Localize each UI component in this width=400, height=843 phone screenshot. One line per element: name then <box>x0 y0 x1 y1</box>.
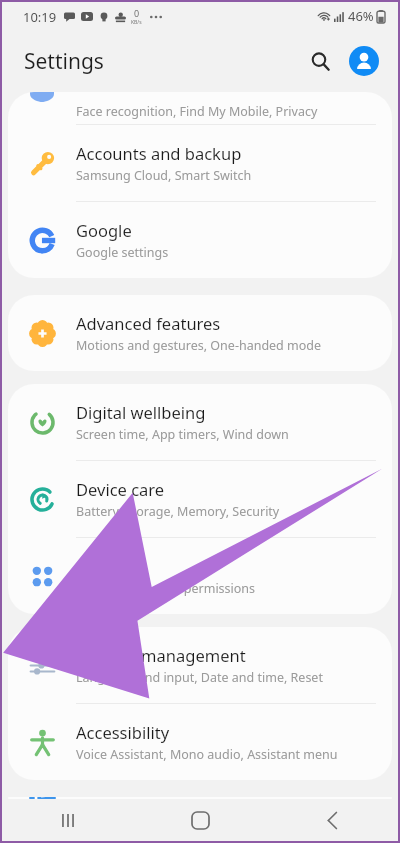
button[interactable]: General management <box>8 627 392 703</box>
button[interactable]: Google <box>8 202 392 278</box>
staticText: Voice Assistant, Mono audio, Assistant m… <box>76 746 338 763</box>
staticText: Face recognition, Find My Mobile, Privac… <box>76 103 318 120</box>
staticText: Default apps, App permissions <box>76 580 256 597</box>
staticText: Motions and gestures, One-handed mode <box>76 337 322 354</box>
staticText: KB/s <box>131 19 142 26</box>
button[interactable]: Accessibility <box>8 704 392 780</box>
staticText: Google settings <box>76 244 169 261</box>
staticText: 0 <box>134 7 140 19</box>
staticText: 46% <box>348 7 374 25</box>
button[interactable]: Account <box>344 41 384 81</box>
staticText: Google <box>76 219 132 241</box>
staticText: Device care <box>76 478 165 500</box>
staticText: Battery, Storage, Memory, Security <box>76 503 280 520</box>
staticText: Advanced features <box>76 312 221 334</box>
staticText: General management <box>76 644 246 666</box>
button[interactable]: Software update <box>8 797 392 799</box>
button[interactable]: Back <box>266 799 398 841</box>
button[interactable]: Home <box>134 799 266 841</box>
staticText: Digital wellbeing <box>76 401 206 423</box>
button[interactable]: Face recognition, Find My Mobile, Privac… <box>8 92 392 124</box>
button[interactable]: Advanced features <box>8 295 392 371</box>
staticText: Accessibility <box>76 721 170 743</box>
staticText: Apps <box>76 555 115 577</box>
button[interactable]: Device care <box>8 461 392 537</box>
staticText: Settings <box>24 47 104 76</box>
staticText: Screen time, App timers, Wind down <box>76 426 289 443</box>
staticText: Accounts and backup <box>76 142 242 164</box>
button[interactable]: Recents <box>2 799 134 841</box>
button[interactable]: Accounts and backup <box>8 125 392 201</box>
button[interactable]: Search <box>300 41 340 81</box>
staticText: Language and input, Date and time, Reset <box>76 669 323 686</box>
button[interactable]: Apps <box>8 538 392 614</box>
staticText: 10:19 <box>23 8 57 26</box>
staticText: Samsung Cloud, Smart Switch <box>76 167 252 184</box>
button[interactable]: Digital wellbeing <box>8 384 392 460</box>
